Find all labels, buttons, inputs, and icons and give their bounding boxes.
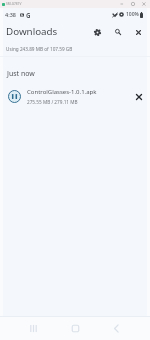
button[interactable]: Cancel download (131, 89, 147, 105)
button[interactable]: Settings (87, 22, 107, 42)
staticText: Downloads (6, 25, 58, 38)
staticText: G (26, 11, 31, 19)
staticText: 4:38 (5, 11, 16, 18)
staticText: Using 243.89 MB of 107.59 GB (6, 46, 73, 52)
staticText: Just now (7, 69, 35, 79)
staticText: ControlGlasses-1.0.1.apk (27, 88, 97, 96)
staticText: 275.55 MB / 279.11 MB (27, 99, 78, 105)
staticText: SM-G781V (6, 2, 22, 6)
button[interactable]: Home (65, 316, 85, 340)
button[interactable]: ControlGlasses-1.0.1.apk (0, 84, 150, 109)
button[interactable]: Back (106, 316, 126, 340)
button[interactable]: Close (128, 22, 148, 42)
staticText: 100% (126, 11, 139, 18)
button[interactable]: Search (108, 22, 128, 42)
button[interactable]: Recent apps (23, 316, 43, 340)
